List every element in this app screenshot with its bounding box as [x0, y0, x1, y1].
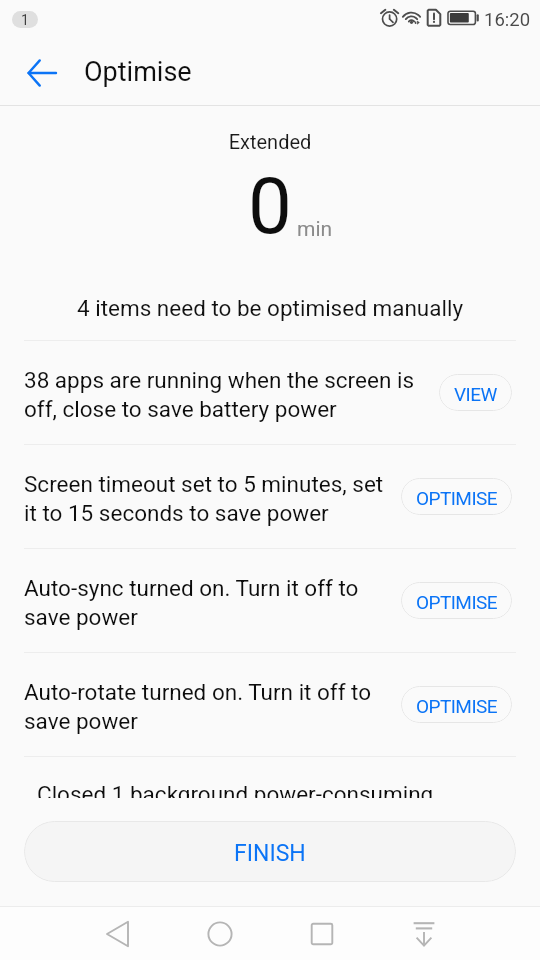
button[interactable]: OPTIMISE: [401, 582, 512, 619]
staticText: FINISH: [234, 840, 306, 867]
button[interactable]: Back: [14, 45, 70, 101]
staticText: Optimise: [84, 56, 192, 88]
staticText: Screen timeout set to 5 minutes, set it …: [24, 471, 384, 526]
button[interactable]: Screen timeout set to 5 minutes, set it …: [24, 445, 512, 548]
staticText: OPTIMISE: [416, 695, 497, 717]
staticText: Extended: [0, 130, 540, 153]
button[interactable]: VIEW: [439, 374, 512, 411]
staticText: 4 items need to be optimised manually: [0, 295, 540, 321]
staticText: min: [297, 217, 333, 242]
staticText: 0: [248, 161, 292, 252]
button[interactable]: Auto-rotate turned on. Turn it off to sa…: [24, 653, 512, 756]
button[interactable]: Recent apps: [271, 907, 373, 960]
staticText: 38 apps are running when the screen is o…: [24, 367, 414, 422]
button[interactable]: Auto-sync turned on. Turn it off to save…: [24, 549, 512, 652]
staticText: OPTIMISE: [416, 591, 497, 613]
button[interactable]: OPTIMISE: [401, 686, 512, 723]
staticText: Closed 1 background power-consuming: [37, 781, 434, 807]
button[interactable]: Hide navigation bar: [373, 907, 475, 960]
button[interactable]: OPTIMISE: [401, 478, 512, 515]
staticText: 1: [21, 12, 29, 28]
staticText: Auto-sync turned on. Turn it off to save…: [24, 575, 359, 630]
staticText: 16:20: [484, 9, 531, 31]
button[interactable]: Back: [67, 907, 169, 960]
staticText: Auto-rotate turned on. Turn it off to sa…: [24, 679, 372, 734]
button[interactable]: Home: [169, 907, 271, 960]
button[interactable]: FINISH: [24, 821, 516, 882]
button[interactable]: 38 apps are running when the screen is o…: [24, 341, 512, 444]
staticText: VIEW: [454, 383, 497, 405]
staticText: OPTIMISE: [416, 487, 497, 509]
